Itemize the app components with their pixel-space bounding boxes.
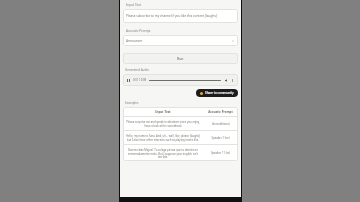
staticText: Examples: [125, 101, 139, 105]
staticText: Hello, my name is Sara. And, uh... well,…: [125, 134, 201, 141]
button[interactable]: Announcer: [123, 35, 238, 46]
staticText: Acoustic Prompt: [126, 29, 151, 33]
button[interactable]: Please subscribe to my channel if you li…: [123, 9, 238, 23]
staticText: Speaker 11 (es): [204, 151, 237, 155]
staticText: Run: [177, 56, 184, 61]
button[interactable]: Hello, my name is Sara. And, uh... well,…: [123, 131, 238, 144]
staticText: Buenos dias Miguel. Tu colega piensa que…: [125, 148, 201, 158]
button[interactable]: More options: [230, 78, 235, 83]
staticText: Acoustic Prompt: [203, 110, 238, 114]
button[interactable]: Pause: [126, 78, 131, 83]
button[interactable]: Run: [123, 53, 238, 64]
staticText: Generated Audio: [125, 68, 149, 72]
button[interactable]: Share to community: [196, 89, 238, 97]
staticText: Announcer: [126, 39, 231, 43]
button[interactable]: Buenos dias Miguel. Tu colega piensa que…: [123, 145, 238, 161]
staticText: Share to community: [205, 91, 234, 95]
staticText: Input Text: [123, 110, 203, 114]
staticText: Input Text: [126, 3, 142, 7]
staticText: Please surprise me and speak in whatever…: [125, 120, 201, 127]
button[interactable]: Please surprise me and speak in whatever…: [123, 117, 238, 130]
button[interactable]: Volume: [224, 78, 229, 83]
staticText: Speaker 1 (en): [204, 136, 237, 140]
staticText: Please subscribe to my channel if you li…: [126, 14, 217, 18]
staticText: Unconditional: [204, 122, 237, 126]
staticText: 0:01 / 0:08: [133, 78, 147, 82]
